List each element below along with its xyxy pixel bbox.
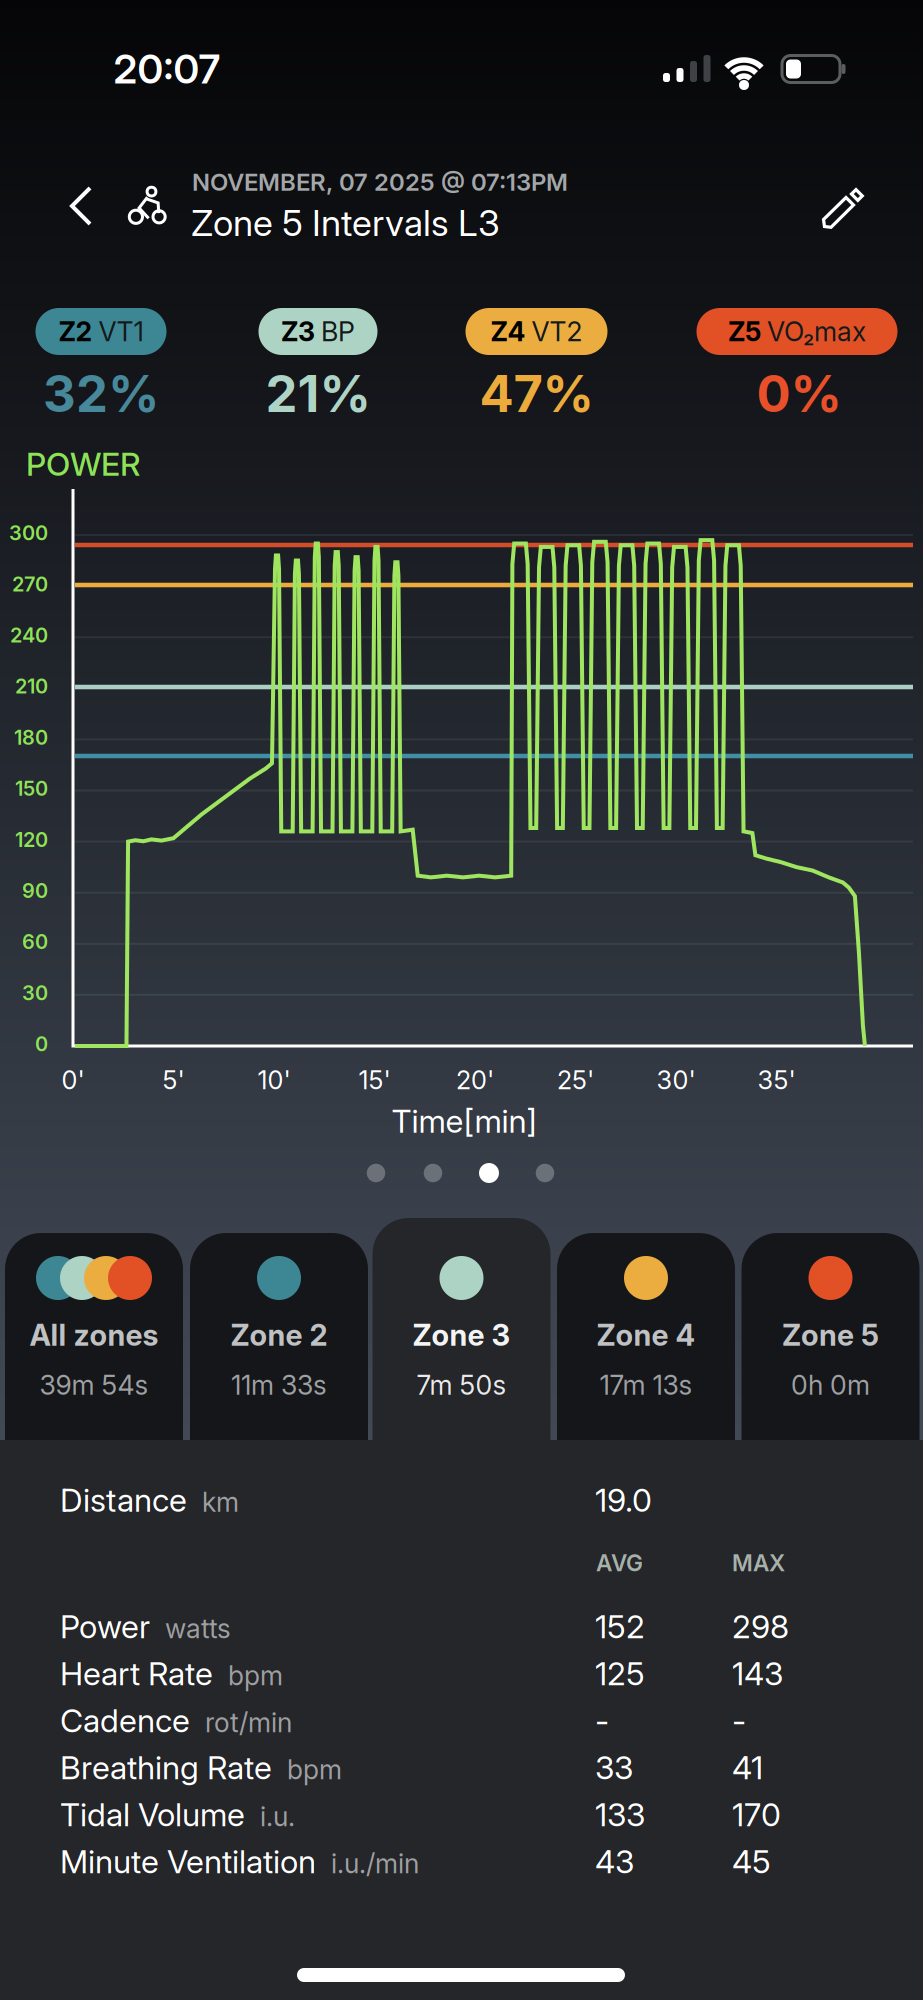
staticText: MAX (732, 1550, 785, 1576)
staticText: 20' (456, 1065, 494, 1095)
staticText: Power (60, 1608, 150, 1645)
staticText: Minute Ventilation (60, 1843, 316, 1880)
staticText: 133 (595, 1796, 645, 1833)
staticText: rot/min (205, 1707, 292, 1738)
staticText: Zone 5 Intervals L3 (191, 202, 500, 244)
staticText: Heart Rate (60, 1655, 213, 1692)
staticText: AVG (596, 1550, 643, 1576)
button[interactable]: Zone 3 (372, 1218, 550, 1490)
staticText: 32% (43, 364, 159, 423)
staticText: 120 (15, 828, 48, 851)
staticText: Z4 (490, 316, 525, 347)
staticText: Zone 2 (230, 1318, 327, 1352)
staticText: 25' (557, 1065, 594, 1095)
staticText: 30 (22, 981, 48, 1005)
staticText: Z2 (58, 316, 92, 347)
button[interactable]: Zone 2 (190, 1233, 368, 1490)
button[interactable]: Back (62, 184, 102, 228)
staticText: 270 (12, 572, 48, 596)
staticText: bpm (228, 1660, 283, 1691)
staticText: 17m 13s (599, 1369, 692, 1401)
staticText: 15' (358, 1065, 390, 1095)
staticText: 90 (22, 879, 48, 902)
staticText: 10' (257, 1065, 290, 1095)
staticText: Distance (60, 1481, 187, 1519)
staticText: Z3 (281, 316, 315, 347)
staticText: 298 (732, 1608, 789, 1645)
staticText: watts (165, 1613, 231, 1644)
staticText: 43 (595, 1843, 634, 1880)
staticText: Zone 3 (412, 1318, 510, 1352)
staticText: Cadence (60, 1702, 190, 1739)
staticText: 152 (595, 1608, 645, 1645)
staticText: - (595, 1702, 609, 1739)
staticText: 0' (61, 1065, 84, 1095)
staticText: 35' (757, 1065, 795, 1095)
staticText: POWER (26, 445, 141, 483)
button[interactable]: All zones (5, 1233, 183, 1490)
staticText: Zone 4 (596, 1318, 695, 1352)
staticText: i.u. (260, 1801, 295, 1832)
staticText: 47% (479, 364, 593, 423)
staticText: 300 (9, 521, 48, 545)
staticText: 41 (732, 1749, 763, 1786)
staticText: 5' (162, 1065, 184, 1095)
staticText: 7m 50s (416, 1369, 506, 1401)
staticText: 30' (656, 1065, 695, 1095)
staticText: km (202, 1486, 239, 1518)
staticText: 60 (22, 930, 48, 954)
staticText: 210 (15, 674, 48, 698)
button[interactable]: Zone 4 (557, 1233, 735, 1490)
staticText: 170 (732, 1796, 781, 1833)
staticText: VO₂max (767, 316, 866, 347)
staticText: bpm (287, 1754, 342, 1785)
staticText: - (732, 1702, 746, 1739)
staticText: i.u./min (331, 1848, 419, 1879)
staticText: 0% (756, 364, 841, 423)
staticText: VT2 (531, 316, 582, 347)
staticText: 33 (595, 1749, 633, 1786)
staticText: 0 (35, 1032, 48, 1056)
staticText: VT1 (98, 316, 143, 347)
staticText: Z5 (728, 316, 761, 347)
staticText: Zone 5 (782, 1318, 879, 1352)
staticText: 19.0 (595, 1481, 652, 1519)
staticText: BP (321, 316, 355, 347)
staticText: Breathing Rate (60, 1749, 272, 1786)
staticText: Tidal Volume (60, 1796, 245, 1833)
staticText: 21% (265, 364, 370, 423)
button[interactable]: Edit (814, 179, 870, 235)
staticText: All zones (29, 1318, 158, 1352)
staticText: 39m 54s (39, 1369, 148, 1401)
staticText: 20:07 (113, 45, 220, 93)
staticText: 0h 0m (791, 1369, 870, 1401)
staticText: NOVEMBER, 07 2025 @ 07:13PM (192, 168, 568, 196)
staticText: 125 (595, 1655, 645, 1692)
staticText: 180 (14, 726, 48, 749)
staticText: 150 (15, 777, 48, 800)
staticText: 45 (732, 1843, 771, 1880)
staticText: Time[min] (391, 1102, 537, 1140)
staticText: 11m 33s (231, 1369, 327, 1401)
staticText: 240 (10, 623, 48, 647)
button[interactable]: Zone 5 (741, 1233, 919, 1490)
staticText: 143 (732, 1655, 783, 1692)
